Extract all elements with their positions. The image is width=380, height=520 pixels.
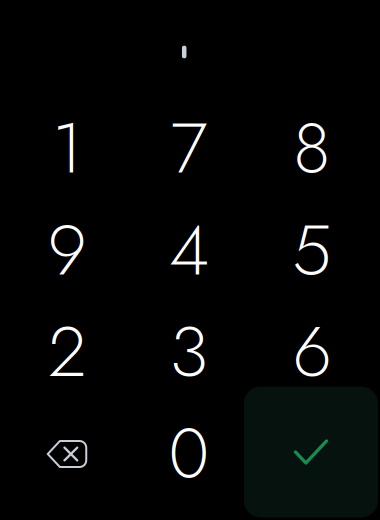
staticText: 0 (168, 402, 209, 504)
staticText: 5 (292, 199, 332, 301)
button[interactable]: 7 (128, 97, 250, 199)
staticText: 2 (48, 300, 86, 402)
staticText: 3 (169, 300, 208, 402)
button[interactable]: 2 (6, 300, 128, 402)
button[interactable]: 3 (128, 300, 250, 402)
staticText: 7 (170, 97, 207, 199)
button[interactable]: 5 (251, 199, 373, 301)
staticText: 1 (52, 97, 82, 199)
button[interactable]: Delete (6, 403, 128, 505)
staticText: 8 (293, 97, 331, 199)
staticText: 6 (292, 300, 331, 402)
staticText: 9 (47, 199, 86, 301)
button[interactable]: 8 (251, 97, 373, 199)
button[interactable]: Confirm (244, 386, 378, 517)
button[interactable]: 0 (128, 402, 250, 504)
staticText: 4 (169, 199, 209, 301)
button[interactable]: 6 (251, 300, 373, 402)
button[interactable]: 1 (6, 97, 128, 199)
button[interactable]: 9 (6, 199, 128, 301)
button[interactable]: 4 (128, 199, 250, 301)
